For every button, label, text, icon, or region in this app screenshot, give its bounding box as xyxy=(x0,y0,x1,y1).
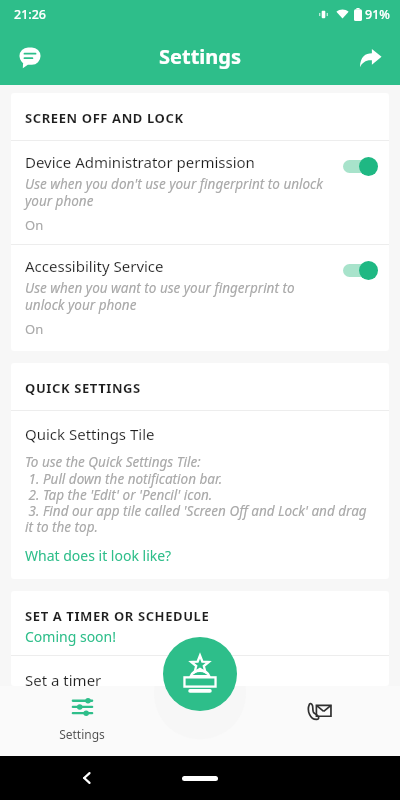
button[interactable]: Device Administrator permission xyxy=(11,141,389,244)
staticText: Quick Settings Tile xyxy=(25,424,155,444)
button[interactable]: What does it look like? xyxy=(25,546,172,565)
staticText: Use when you want to use your fingerprin… xyxy=(25,279,335,314)
staticText: On xyxy=(25,216,44,234)
staticText: Settings xyxy=(59,726,105,742)
staticText: On xyxy=(25,320,44,338)
staticText: To use the Quick Settings Tile: 1. Pull … xyxy=(25,453,375,536)
button[interactable]: Contact us xyxy=(264,686,374,734)
button[interactable]: Accessibility Service xyxy=(11,245,389,348)
button[interactable]: Premium xyxy=(163,637,237,711)
staticText: 91% xyxy=(365,6,390,23)
staticText: Set a timer xyxy=(25,670,102,686)
button[interactable]: Feedback xyxy=(8,35,52,79)
button[interactable]: Quick Settings Tile xyxy=(11,411,389,579)
staticText: Use when you don't use your fingerprint … xyxy=(25,175,335,210)
staticText: Coming soon! xyxy=(25,627,116,646)
staticText: Settings xyxy=(159,43,241,70)
staticText: Accessibility Service xyxy=(25,256,164,276)
staticText: 21:26 xyxy=(14,6,47,23)
staticText: Device Administrator permission xyxy=(25,152,255,172)
button[interactable]: Settings xyxy=(27,686,137,742)
staticText: QUICK SETTINGS xyxy=(25,379,141,397)
staticText: SCREEN OFF AND LOCK xyxy=(25,109,184,127)
staticText: SET A TIMER OR SCHEDULE xyxy=(25,607,210,625)
button[interactable]: Share xyxy=(348,35,392,79)
